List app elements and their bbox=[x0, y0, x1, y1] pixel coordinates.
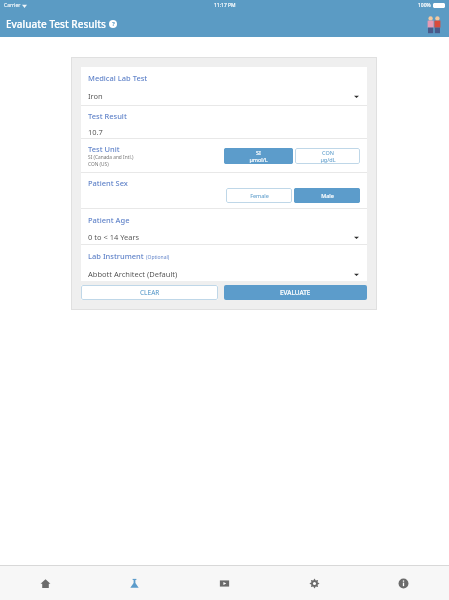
staticText: 0 to < 14 Years bbox=[88, 232, 140, 242]
staticText: 11:17 PM bbox=[214, 2, 236, 9]
button[interactable]: Home bbox=[1, 566, 90, 600]
staticText: Patient Age bbox=[88, 215, 130, 225]
staticText: Female bbox=[250, 192, 269, 199]
staticText: Iron bbox=[88, 91, 103, 101]
staticText: EVALUATE bbox=[280, 288, 311, 297]
button[interactable]: Info bbox=[359, 566, 448, 600]
button[interactable]: CLEAR bbox=[81, 285, 218, 300]
staticText: 100% bbox=[418, 2, 431, 9]
button[interactable]: Help bbox=[109, 20, 117, 28]
button[interactable]: Lab Tests bbox=[90, 566, 179, 600]
button[interactable]: SI bbox=[224, 148, 293, 164]
button[interactable]: Medical Lab Test bbox=[81, 67, 367, 105]
button[interactable]: Profile bbox=[424, 14, 444, 34]
staticText: µmol/L bbox=[249, 156, 268, 163]
button[interactable]: CON bbox=[295, 148, 360, 164]
button[interactable]: Settings bbox=[270, 566, 359, 600]
button[interactable]: Test Result bbox=[81, 106, 367, 138]
staticText: Medical Lab Test bbox=[88, 73, 148, 83]
staticText: CON bbox=[322, 149, 334, 156]
staticText: Test Unit bbox=[88, 144, 120, 154]
staticText: SI (Canada and Intl.) bbox=[88, 154, 134, 161]
button[interactable]: Male bbox=[294, 188, 360, 203]
staticText: SI bbox=[256, 149, 261, 156]
staticText: ? bbox=[112, 20, 115, 28]
button[interactable]: Patient Sex bbox=[81, 173, 367, 208]
staticText: Test Result bbox=[88, 111, 127, 121]
staticText: CON (US) bbox=[88, 161, 109, 168]
staticText: Male bbox=[321, 192, 334, 199]
staticText: Carrier bbox=[4, 2, 21, 9]
staticText: Abbott Architect (Default) bbox=[88, 269, 178, 279]
button[interactable]: Test Unit bbox=[81, 139, 367, 172]
staticText: CLEAR bbox=[140, 288, 160, 297]
staticText: 10.7 bbox=[88, 127, 103, 137]
button[interactable]: Patient Age bbox=[81, 209, 367, 244]
staticText: Lab Instrument bbox=[88, 251, 144, 261]
staticText: µg/dL bbox=[320, 156, 336, 163]
button[interactable]: EVALUATE bbox=[224, 285, 367, 300]
button[interactable]: Female bbox=[226, 188, 292, 203]
button[interactable]: Videos bbox=[180, 566, 269, 600]
staticText: Evaluate Test Results bbox=[6, 17, 106, 31]
staticText: Patient Sex bbox=[88, 178, 128, 188]
staticText: (Optional) bbox=[146, 254, 170, 261]
button[interactable]: Lab Instrument bbox=[81, 245, 367, 281]
